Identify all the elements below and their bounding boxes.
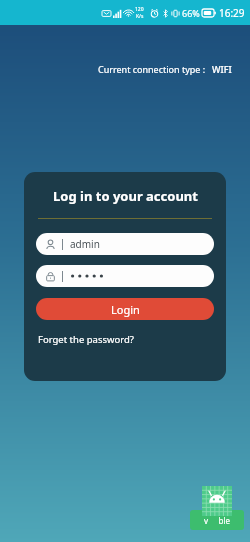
staticText: 66% <box>182 7 200 19</box>
button[interactable]: Login <box>36 298 214 320</box>
staticText: 120 <box>135 6 144 13</box>
staticText: v ble <box>204 515 230 526</box>
staticText: Current connection type : <box>98 63 206 75</box>
button[interactable] <box>36 265 214 287</box>
staticText: WIFI <box>212 63 232 75</box>
button[interactable]: admin <box>36 233 214 255</box>
staticText: Log in to your account <box>53 187 198 205</box>
staticText: Forget the password? <box>38 333 134 346</box>
staticText: 16:29 <box>219 6 245 20</box>
staticText: admin <box>70 237 100 251</box>
button[interactable]: Forget the password? <box>36 331 136 348</box>
staticText: K/s <box>136 13 144 20</box>
staticText: Login <box>111 302 140 317</box>
